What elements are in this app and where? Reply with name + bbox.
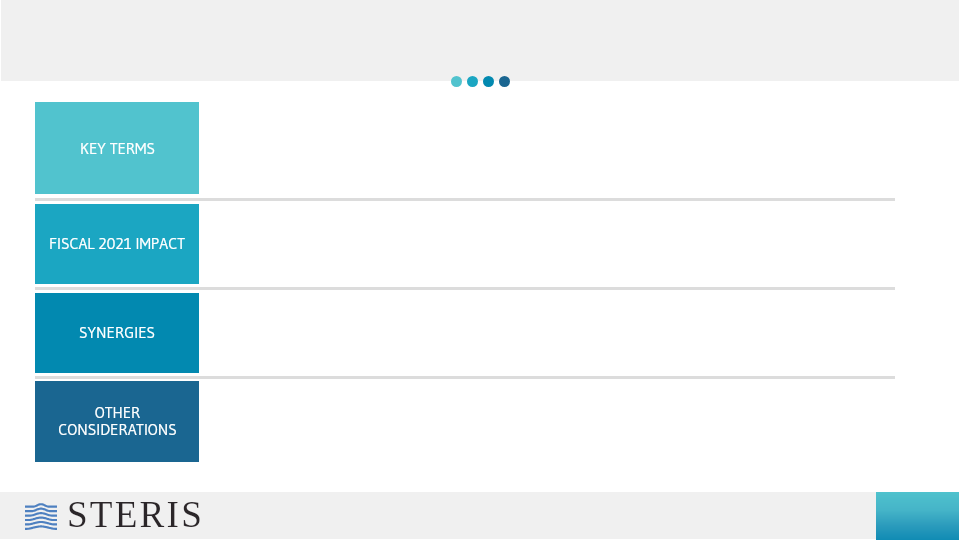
staticText: OTHER CONSIDERATIONS	[58, 403, 177, 439]
button[interactable]: KEY TERMS	[35, 102, 199, 194]
other: STERIS logo	[25, 503, 57, 529]
button[interactable]: SYNERGIES	[35, 293, 199, 373]
button[interactable]: FISCAL 2021 IMPACT	[35, 204, 199, 284]
staticText: FISCAL 2021 IMPACT	[49, 234, 185, 253]
staticText: KEY TERMS	[80, 139, 155, 158]
staticText: STERIS	[67, 494, 204, 535]
staticText: SYNERGIES	[79, 323, 155, 342]
button[interactable]: OTHER CONSIDERATIONS	[35, 381, 199, 462]
button[interactable]: Section indicator	[451, 76, 510, 87]
